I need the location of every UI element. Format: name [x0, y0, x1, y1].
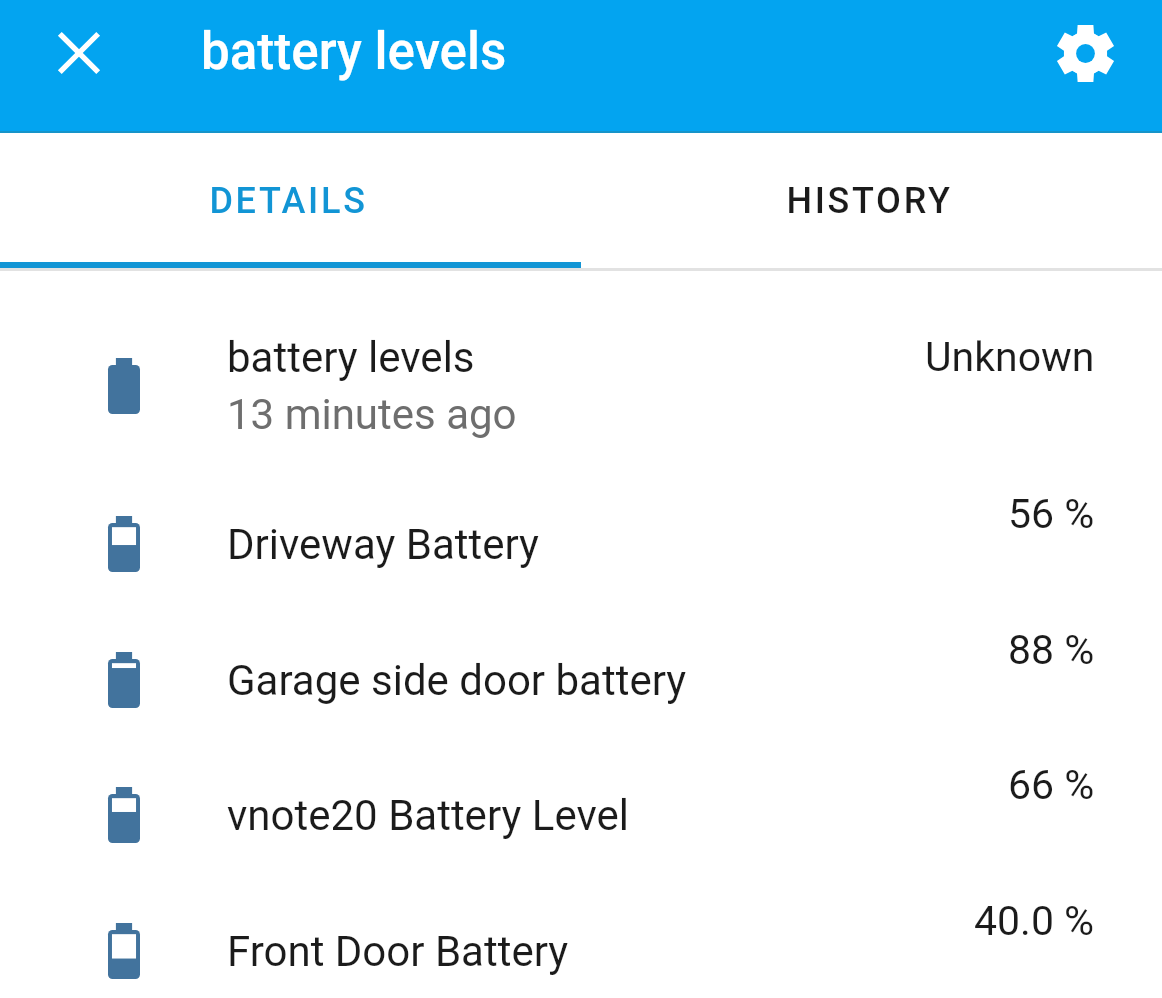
- button[interactable]: Garage side door battery: [0, 612, 1162, 748]
- staticText: 56 %: [1008, 490, 1095, 538]
- staticText: Unknown: [925, 333, 1095, 381]
- button[interactable]: Close: [47, 21, 111, 85]
- staticText: Front Door Battery: [227, 927, 569, 976]
- staticText: battery levels: [227, 333, 475, 382]
- staticText: Driveway Battery: [227, 520, 539, 569]
- staticText: 40.0 %: [974, 897, 1095, 945]
- button[interactable]: Settings: [1046, 14, 1124, 92]
- staticText: battery levels: [201, 22, 507, 82]
- staticText: Garage side door battery: [227, 656, 687, 705]
- button[interactable]: battery levels: [0, 296, 1162, 476]
- button[interactable]: HISTORY: [581, 133, 1162, 268]
- button[interactable]: DETAILS: [0, 133, 581, 268]
- staticText: 66 %: [1008, 761, 1095, 809]
- staticText: HISTORY: [786, 180, 953, 222]
- button[interactable]: Front Door Battery: [0, 883, 1162, 998]
- button[interactable]: vnote20 Battery Level: [0, 747, 1162, 883]
- button[interactable]: Driveway Battery: [0, 476, 1162, 612]
- staticText: 13 minutes ago: [227, 390, 517, 439]
- staticText: vnote20 Battery Level: [227, 791, 629, 840]
- staticText: 88 %: [1008, 626, 1095, 674]
- staticText: DETAILS: [209, 180, 368, 222]
